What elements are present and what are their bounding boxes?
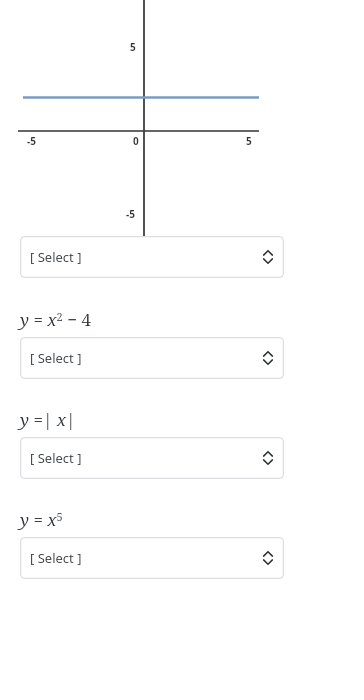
staticText: [ Select ] <box>30 248 82 266</box>
staticText: y =| x| <box>20 408 76 431</box>
staticText: [ Select ] <box>30 449 82 467</box>
staticText: 0 <box>133 134 139 148</box>
button[interactable]: [ Select ] <box>20 236 284 278</box>
button[interactable]: [ Select ] <box>20 337 284 379</box>
staticText: [ Select ] <box>30 549 82 567</box>
staticText: 5 <box>130 40 136 54</box>
other: Open dropdown <box>261 450 275 466</box>
staticText: -5 <box>27 134 36 148</box>
button[interactable]: [ Select ] <box>20 437 284 479</box>
staticText: y = x2 − 4 <box>20 308 91 331</box>
staticText: 5 <box>246 134 252 148</box>
other: Open dropdown <box>261 249 275 265</box>
other: Open dropdown <box>261 350 275 366</box>
staticText: -5 <box>126 207 135 221</box>
button[interactable]: [ Select ] <box>20 537 284 579</box>
staticText: y = x5 <box>20 508 63 531</box>
staticText: [ Select ] <box>30 349 82 367</box>
other: Open dropdown <box>261 550 275 566</box>
